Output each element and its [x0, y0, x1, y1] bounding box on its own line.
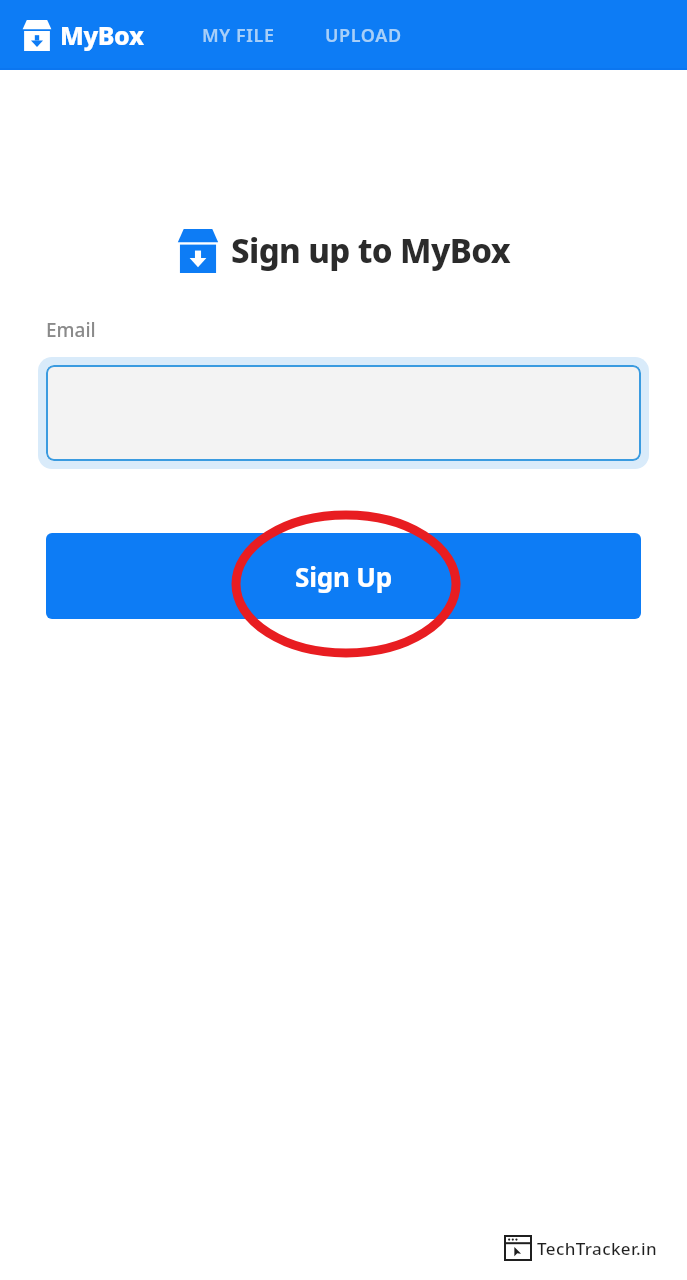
staticText: Sign Up	[295, 559, 392, 594]
button[interactable]: MY FILE	[196, 13, 281, 58]
button[interactable]: UPLOAD	[319, 13, 408, 58]
staticText: MY FILE	[202, 23, 275, 48]
staticText: Sign up to MyBox	[231, 228, 511, 273]
button[interactable]: Sign Up	[46, 533, 641, 619]
staticText: Email	[46, 317, 96, 343]
button[interactable]	[46, 365, 641, 461]
staticText: TechTracker.in	[537, 1237, 657, 1260]
button[interactable]: MyBox	[20, 12, 146, 58]
staticText: UPLOAD	[325, 23, 402, 48]
staticText: MyBox	[60, 18, 144, 52]
